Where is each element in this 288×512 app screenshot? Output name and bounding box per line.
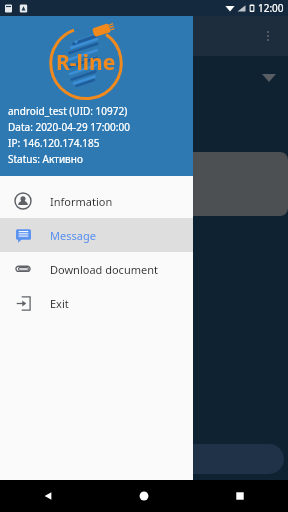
staticText: Download document [50, 262, 158, 277]
button[interactable]: Back [0, 480, 96, 512]
staticText: IP: 146.120.174.185 [8, 136, 100, 150]
staticText: Status: Активно [8, 152, 83, 166]
button[interactable]: Message [0, 218, 193, 252]
button[interactable]: Exit [0, 286, 193, 320]
staticText: Message [50, 228, 96, 243]
staticText: Data: 2020-04-29 17:00:00 [8, 120, 130, 134]
staticText: 12:00 [258, 1, 284, 15]
button[interactable]: More options [254, 22, 282, 50]
staticText: R-line [56, 48, 116, 77]
staticText: android_test (UID: 10972) [8, 104, 128, 118]
staticText: Information [50, 194, 113, 209]
button[interactable]: 2020-04-29 16:57:18 [76, 152, 288, 216]
staticText: 2020-04-29 16:57:18 [84, 165, 170, 177]
staticText: 12:00 [258, 1, 284, 15]
button[interactable]: Recent apps [192, 480, 288, 512]
button[interactable]: Information [0, 184, 193, 218]
button[interactable]: Home [96, 480, 192, 512]
button[interactable]: Send [64, 444, 284, 474]
button[interactable]: Download document [0, 252, 193, 286]
staticText: Exit [50, 296, 69, 311]
